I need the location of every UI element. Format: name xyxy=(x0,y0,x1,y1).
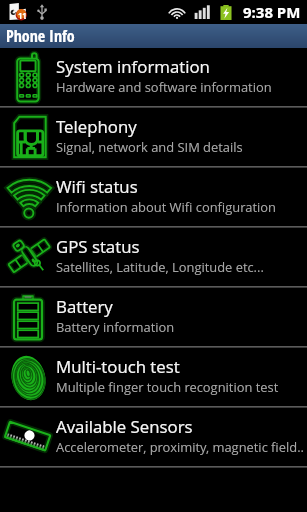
staticText: Telephony xyxy=(56,115,137,138)
button[interactable]: Telephony xyxy=(0,108,307,168)
button[interactable]: GPS status xyxy=(0,228,307,288)
staticText: Hardware and software information xyxy=(56,78,272,96)
button[interactable]: System information xyxy=(0,48,307,108)
staticText: Battery information xyxy=(56,318,175,336)
staticText: Battery xyxy=(56,295,113,318)
staticText: GPS status xyxy=(56,235,140,258)
button[interactable]: Available Sensors xyxy=(0,408,307,468)
staticText: Wifi status xyxy=(56,175,138,198)
staticText: System information xyxy=(56,55,210,78)
staticText: Satellites, Latitude, Longitude etc... xyxy=(56,258,264,276)
staticText: Information about Wifi configuration xyxy=(56,198,276,216)
staticText: Signal, network and SIM details xyxy=(56,138,243,156)
staticText: Available Sensors xyxy=(56,415,193,438)
staticText: 9:38 PM xyxy=(243,2,301,22)
button[interactable]: Battery xyxy=(0,288,307,348)
button[interactable]: Multi-touch test xyxy=(0,348,307,408)
staticText: Accelerometer, proximity, magnetic field… xyxy=(56,438,304,456)
staticText: 11 xyxy=(18,9,27,21)
staticText: Multiple finger touch recognition test xyxy=(56,378,279,396)
staticText: Phone Info xyxy=(6,25,75,47)
staticText: Multi-touch test xyxy=(56,355,180,378)
button[interactable]: Wifi status xyxy=(0,168,307,228)
